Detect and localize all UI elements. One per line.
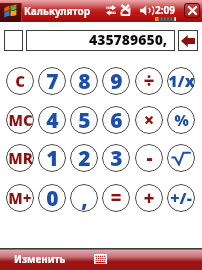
button[interactable]: Изменить	[7, 250, 67, 268]
staticText: %	[174, 110, 189, 130]
staticText: +	[143, 185, 155, 211]
staticText: 6	[110, 106, 123, 134]
button[interactable]: Keyboard	[92, 251, 109, 267]
staticText: ÷	[143, 68, 155, 94]
button[interactable]: M+	[6, 184, 34, 212]
staticText: 8	[78, 67, 91, 95]
staticText: 435789650,	[89, 30, 168, 49]
button[interactable]: 2	[70, 144, 98, 172]
staticText: Калькулятор	[24, 4, 91, 18]
button[interactable]: 5	[70, 106, 98, 134]
staticText: 7	[46, 67, 59, 95]
button[interactable]: MC	[6, 106, 34, 134]
staticText: ×	[143, 107, 155, 133]
button[interactable]: MR	[6, 144, 34, 172]
button[interactable]: 3	[102, 144, 130, 172]
button[interactable]: -	[135, 144, 163, 172]
staticText: 2	[78, 144, 91, 172]
staticText: 0	[46, 184, 59, 212]
staticText: 3	[110, 144, 123, 172]
button[interactable]: 1/x	[167, 67, 195, 95]
button[interactable]: ÷	[135, 67, 163, 95]
button[interactable]: 7	[38, 67, 66, 95]
staticText: +/-	[170, 187, 192, 209]
button[interactable]: 8	[70, 67, 98, 95]
staticText: 5	[78, 106, 91, 134]
button[interactable]: 6	[102, 106, 130, 134]
staticText: 1	[46, 144, 59, 172]
button[interactable]: √	[167, 144, 195, 172]
button[interactable]: 0	[38, 184, 66, 212]
button[interactable]: Close	[184, 3, 200, 18]
staticText: 1/x	[168, 70, 195, 92]
staticText: ,	[81, 185, 88, 212]
staticText: -	[146, 145, 153, 171]
button[interactable]: Memory indicator	[4, 30, 23, 51]
staticText: 4	[46, 106, 59, 134]
staticText: =	[110, 185, 122, 211]
button[interactable]: %	[167, 106, 195, 134]
button[interactable]: 4	[38, 106, 66, 134]
button[interactable]: ,	[70, 184, 98, 212]
staticText: 9	[110, 67, 123, 95]
staticText: MR	[8, 148, 33, 168]
button[interactable]: 1	[38, 144, 66, 172]
button[interactable]: Backspace	[178, 30, 198, 51]
button[interactable]: =	[102, 184, 130, 212]
staticText: M+	[8, 188, 32, 208]
staticText: MC	[8, 110, 33, 130]
staticText: C	[15, 71, 25, 91]
button[interactable]: +	[135, 184, 163, 212]
staticText: 2:09	[155, 3, 175, 17]
button[interactable]: +/-	[167, 184, 195, 212]
button[interactable]: 9	[102, 67, 130, 95]
button[interactable]: C	[6, 67, 34, 95]
staticText: Изменить	[14, 252, 66, 266]
button[interactable]: ×	[135, 106, 163, 134]
button[interactable]: Start	[0, 3, 21, 22]
